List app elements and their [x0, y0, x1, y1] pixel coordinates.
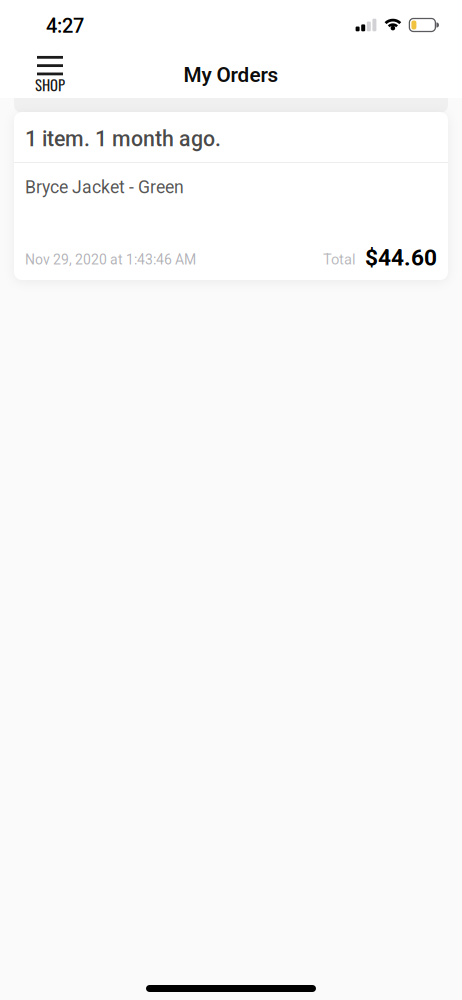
staticText: 4:27: [46, 14, 84, 38]
staticText: 1 item. 1 month ago.: [25, 126, 221, 151]
staticText: Nov 29, 2020 at 1:43:46 AM: [25, 252, 196, 268]
button[interactable]: Shop menu: [26, 48, 74, 98]
staticText: SHOP: [35, 74, 65, 95]
staticText: Bryce Jacket - Green: [25, 177, 184, 198]
button[interactable]: 1 item. 1 month ago.: [14, 112, 448, 280]
staticText: My Orders: [183, 63, 278, 87]
staticText: Total: [323, 251, 356, 268]
staticText: $44.60: [365, 244, 437, 271]
